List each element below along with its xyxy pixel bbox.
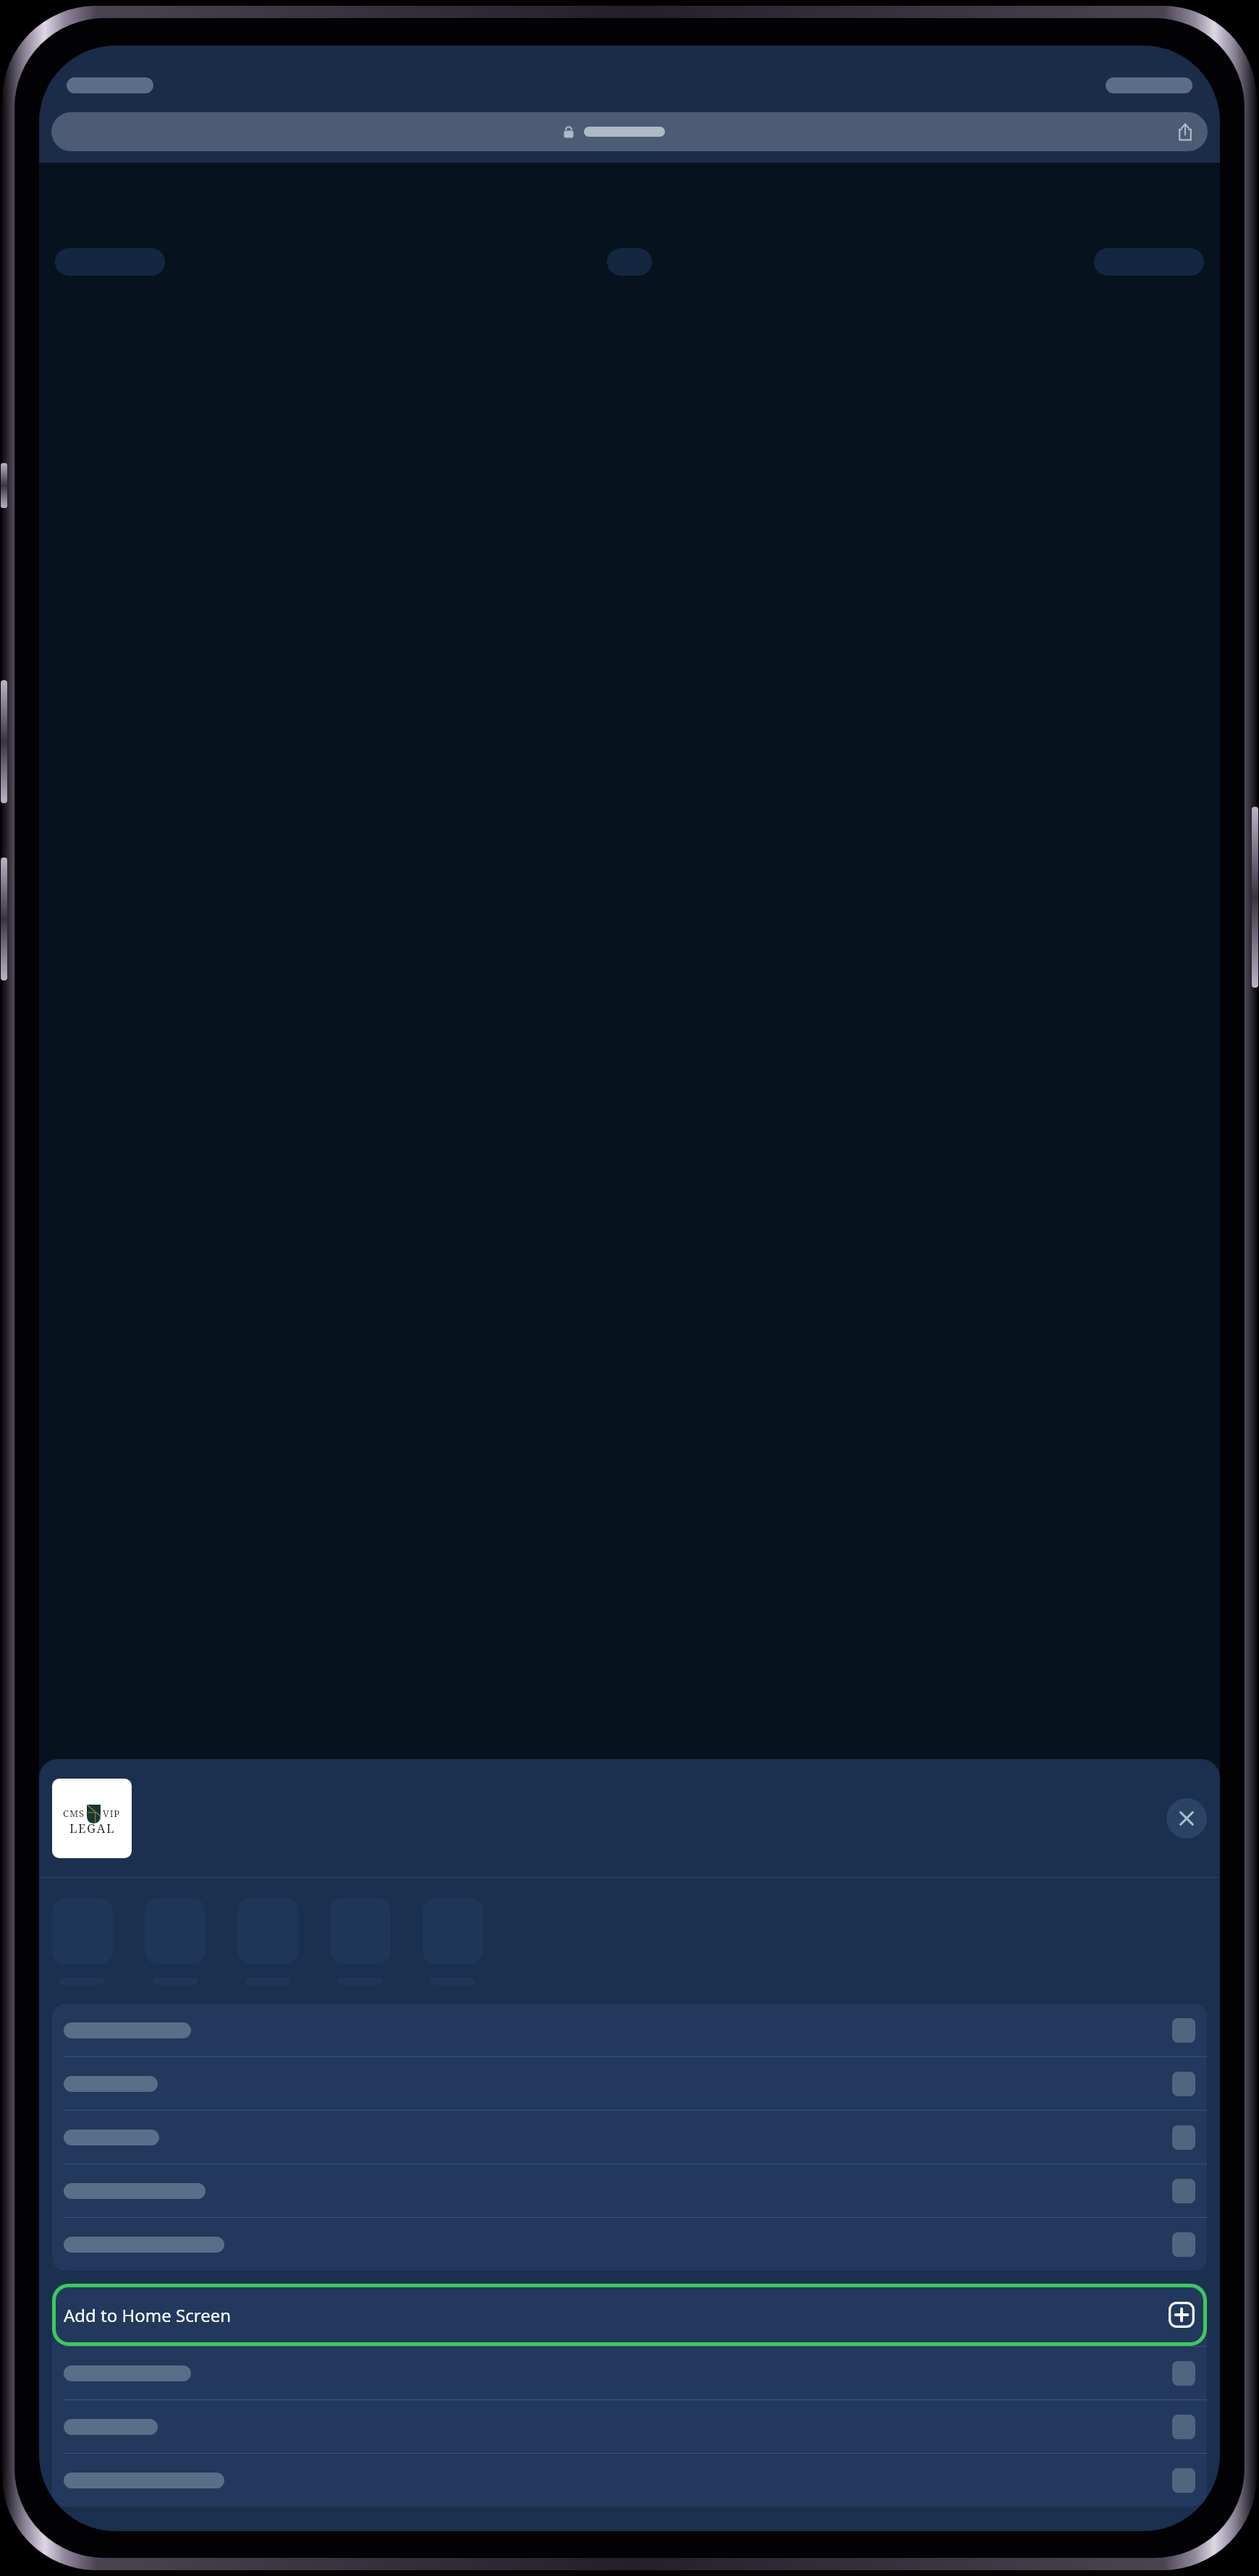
button[interactable]: Share option xyxy=(52,2110,1207,2164)
button[interactable]: Share option xyxy=(52,2217,1207,2271)
staticText: CMS xyxy=(63,1807,85,1820)
button[interactable]: Share option xyxy=(52,2004,1207,2056)
button[interactable]: Share xyxy=(1176,122,1195,141)
staticText: LEGAL xyxy=(69,1820,115,1836)
button[interactable]: Share option xyxy=(52,2164,1207,2217)
staticText: VIP xyxy=(103,1807,121,1820)
button[interactable]: Address bar xyxy=(51,112,1208,151)
button[interactable]: Add to Home Screen xyxy=(64,2284,1195,2346)
button[interactable]: Close xyxy=(1166,1798,1207,1839)
staticText: Add to Home Screen xyxy=(64,2303,232,2327)
button[interactable]: Share option xyxy=(52,2453,1207,2507)
button[interactable]: Share option xyxy=(52,2056,1207,2110)
button[interactable]: Share option xyxy=(52,2399,1207,2453)
button[interactable]: Share option xyxy=(52,2346,1207,2399)
